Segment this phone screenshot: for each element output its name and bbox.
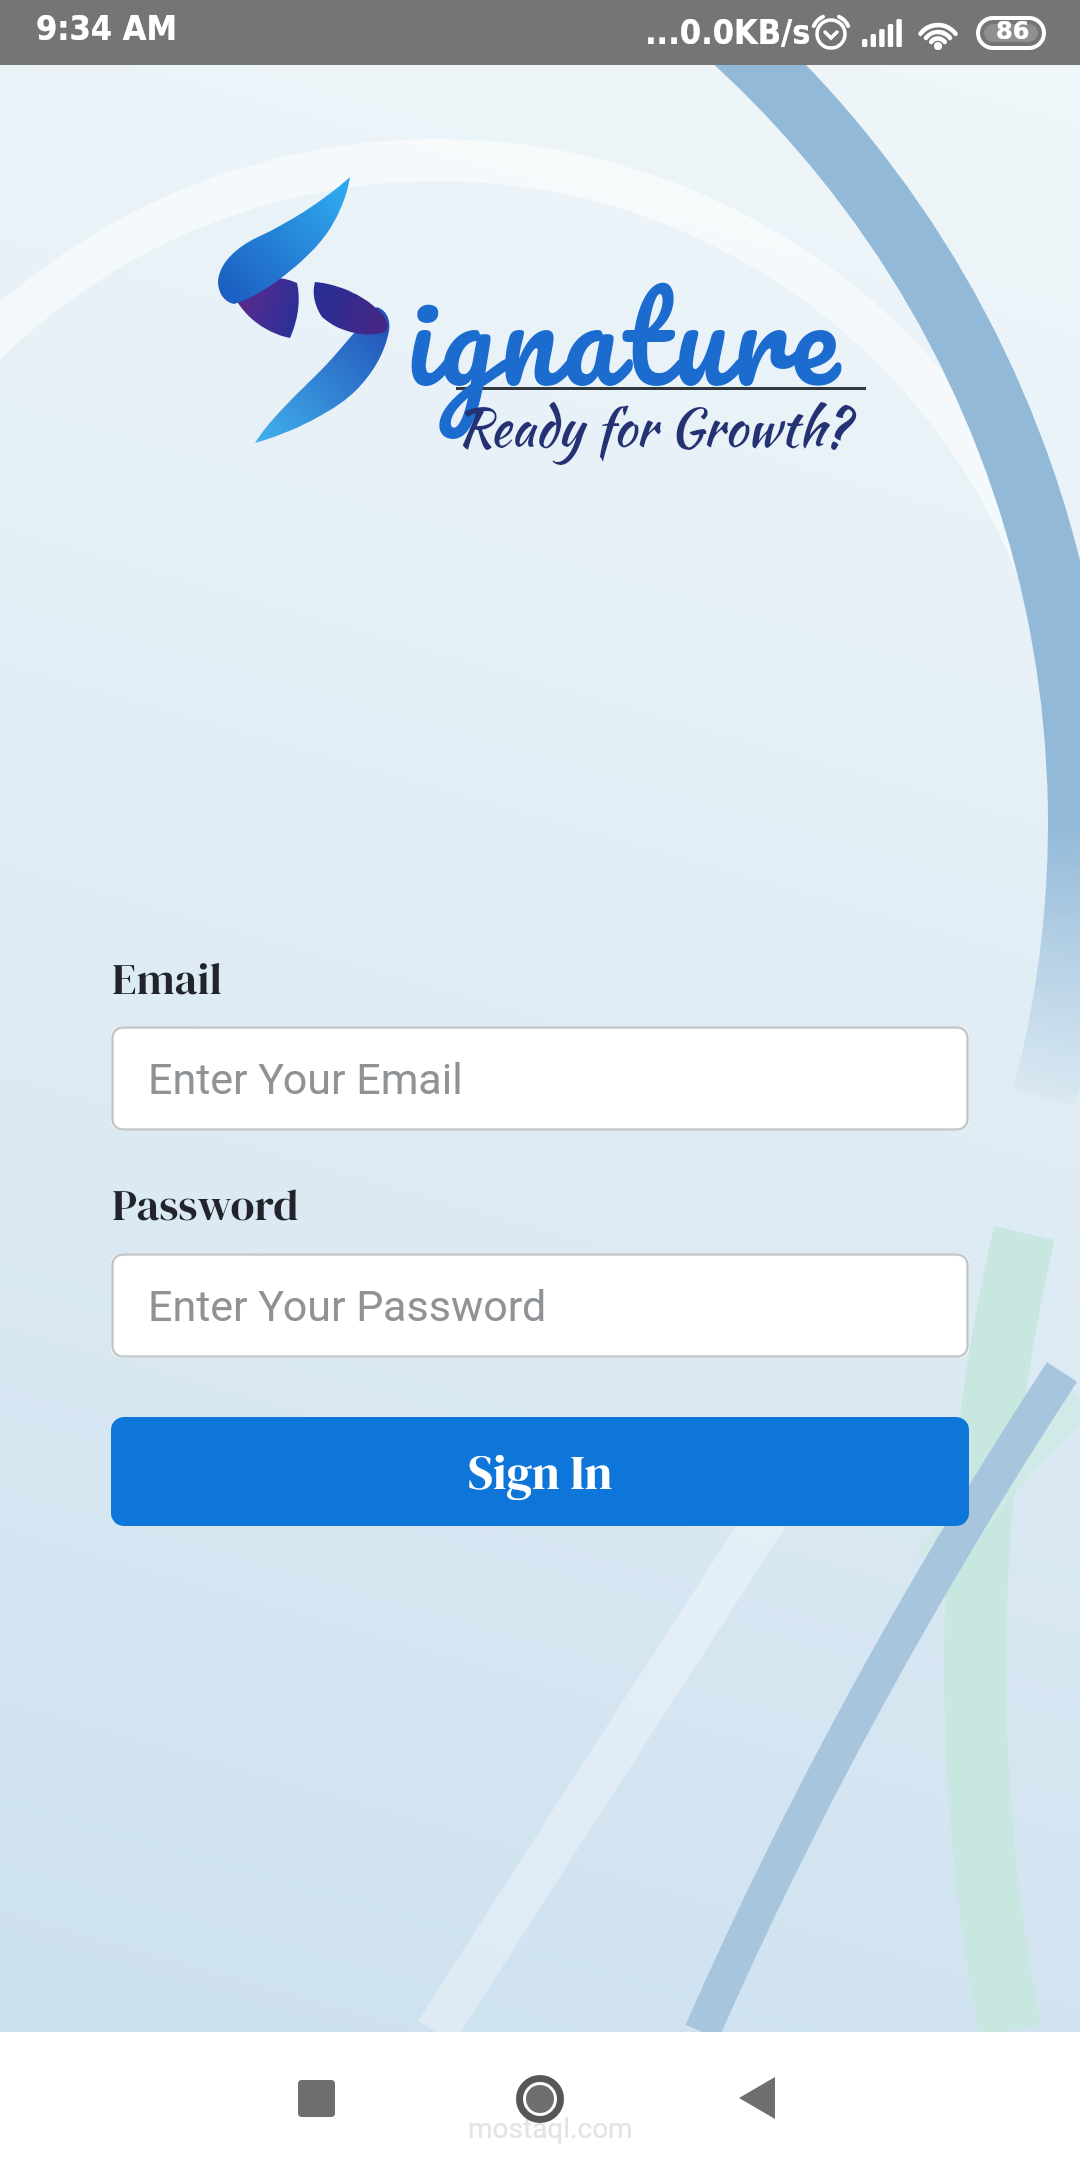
staticText: 9:34 AM <box>36 8 177 48</box>
staticText: Email <box>112 948 223 1008</box>
button[interactable]: Enter Your Email <box>111 1026 969 1131</box>
button[interactable] <box>288 2070 346 2128</box>
button[interactable] <box>735 2070 793 2128</box>
staticText: Enter Your Password <box>148 1281 547 1331</box>
staticText: mostaql.com <box>468 2112 633 2145</box>
staticText: ignature <box>406 231 844 438</box>
staticText: 86 <box>996 17 1030 45</box>
button[interactable]: Sign In <box>111 1417 969 1526</box>
staticText: Sign In <box>468 1439 613 1505</box>
button[interactable]: Enter Your Password <box>111 1253 969 1358</box>
staticText: Enter Your Email <box>148 1054 463 1104</box>
staticText: Ready for Growth? <box>456 390 850 465</box>
staticText: ...0.0KB/s <box>645 12 811 52</box>
staticText: Password <box>112 1174 299 1234</box>
button[interactable] <box>511 2070 569 2128</box>
